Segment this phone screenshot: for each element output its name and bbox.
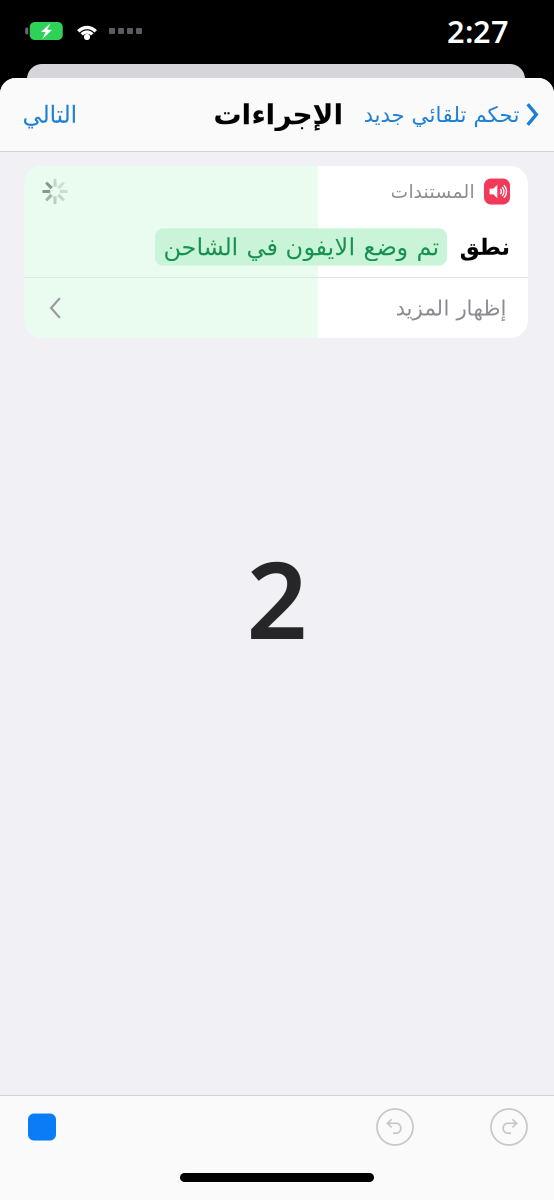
staticText: نطق [459, 234, 510, 260]
button[interactable]: المستندات [24, 166, 528, 338]
button[interactable]: Redo [491, 1109, 527, 1145]
staticText: التالي [22, 101, 77, 128]
button[interactable]: تحكم تلقائي جديد [363, 78, 554, 151]
staticText: 2:27 [447, 11, 509, 51]
staticText: الإجراءات [213, 99, 343, 130]
button[interactable]: التالي [0, 78, 99, 151]
staticText: تحكم تلقائي جديد [363, 102, 519, 127]
staticText: تم وضع الايفون في الشاحن [163, 233, 439, 261]
staticText: 2 [246, 527, 307, 669]
staticText: إظهار المزيد [395, 296, 506, 320]
button[interactable]: Variable [28, 1113, 56, 1140]
staticText: المستندات [390, 181, 474, 202]
button[interactable]: Undo [377, 1109, 413, 1145]
